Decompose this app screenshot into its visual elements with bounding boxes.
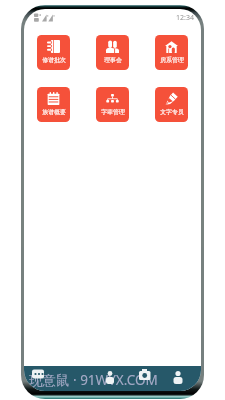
button[interactable]: 修谱批次 bbox=[37, 35, 70, 70]
button[interactable]: 理事会 bbox=[96, 35, 129, 70]
button[interactable]: 文字专员 bbox=[155, 87, 188, 122]
staticText: 现意鼠 · 91WYX.COM bbox=[29, 371, 158, 389]
staticText: 文字专员 bbox=[160, 108, 184, 115]
staticText: 修谱批次 bbox=[42, 56, 66, 63]
staticText: 族谱概要 bbox=[42, 108, 66, 115]
staticText: 房系管理 bbox=[160, 56, 184, 63]
staticText: 12:34 bbox=[176, 13, 194, 23]
staticText: 字辈管理 bbox=[101, 108, 125, 115]
button[interactable]: 族谱概要 bbox=[37, 87, 70, 122]
button[interactable]: 房系管理 bbox=[155, 35, 188, 70]
staticText: 理事会 bbox=[104, 56, 122, 63]
button[interactable]: 字辈管理 bbox=[96, 87, 129, 122]
